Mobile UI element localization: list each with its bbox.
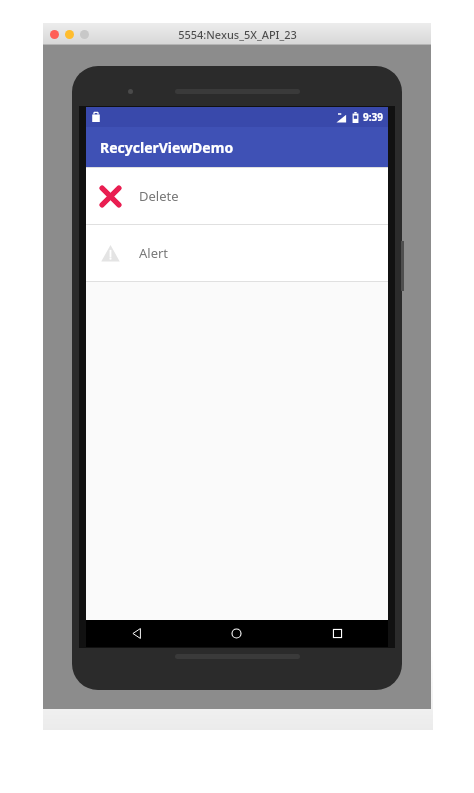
button[interactable]: Minimize window <box>65 30 74 39</box>
staticText: 5554:Nexus_5X_API_23 <box>178 27 297 42</box>
staticText: Delete <box>139 187 179 205</box>
staticText: Alert <box>139 244 169 262</box>
staticText: 9:39 <box>363 110 383 124</box>
button[interactable]: Close window <box>50 30 59 39</box>
button[interactable]: Delete <box>86 168 388 224</box>
button[interactable]: Recent apps <box>287 620 388 647</box>
button[interactable]: Alert <box>86 225 388 281</box>
button[interactable]: Back <box>86 620 186 647</box>
staticText: RecyclerViewDemo <box>100 138 234 157</box>
button[interactable]: Home <box>186 620 287 647</box>
